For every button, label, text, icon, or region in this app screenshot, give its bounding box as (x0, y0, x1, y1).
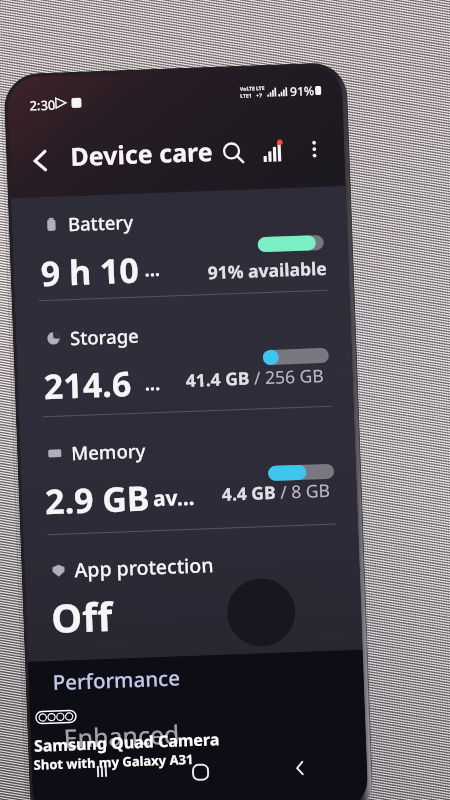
button[interactable]: Recents (94, 763, 110, 780)
button[interactable]: Storage (15, 300, 354, 424)
staticText: App protection (74, 551, 214, 583)
button[interactable]: Diagnostics (252, 130, 295, 173)
staticText: 4.4 GB / 8 GB (221, 478, 331, 506)
staticText: 91% available (207, 256, 327, 284)
staticText: Off (50, 589, 113, 644)
staticText: ... (144, 371, 161, 396)
button[interactable]: Battery (11, 186, 350, 310)
staticText: 2.9 GB (44, 474, 151, 524)
staticText: Shot with my Galaxy A31 (33, 750, 194, 774)
staticText: 41.4 GB / 256 GB (185, 363, 325, 392)
staticText: Memory (71, 437, 147, 465)
button[interactable]: Search (212, 131, 255, 175)
staticText: LTE1 (240, 92, 252, 100)
staticText: Samsung Quad Camera (34, 728, 220, 757)
staticText: av... (152, 483, 195, 513)
staticText: LTE (256, 85, 265, 92)
staticText: 91% (290, 82, 314, 99)
staticText: Battery (67, 209, 134, 236)
staticText: +7 (256, 92, 262, 99)
staticText: 9 h 10 (40, 247, 140, 296)
staticText: Enhanced (63, 716, 180, 755)
staticText: Device care (70, 134, 214, 173)
button[interactable]: Memory (19, 415, 358, 539)
button[interactable]: Navigate up (19, 138, 62, 182)
staticText: ... (144, 257, 161, 282)
button[interactable]: Home (192, 763, 209, 781)
button[interactable]: More options (294, 128, 335, 170)
staticText: 2:30 (29, 96, 56, 114)
staticText: Storage (70, 323, 139, 350)
button[interactable]: Back (292, 760, 308, 776)
staticText: VoLTE (240, 85, 255, 93)
staticText: 214.6 (43, 360, 133, 409)
staticText: Performance (52, 663, 181, 696)
